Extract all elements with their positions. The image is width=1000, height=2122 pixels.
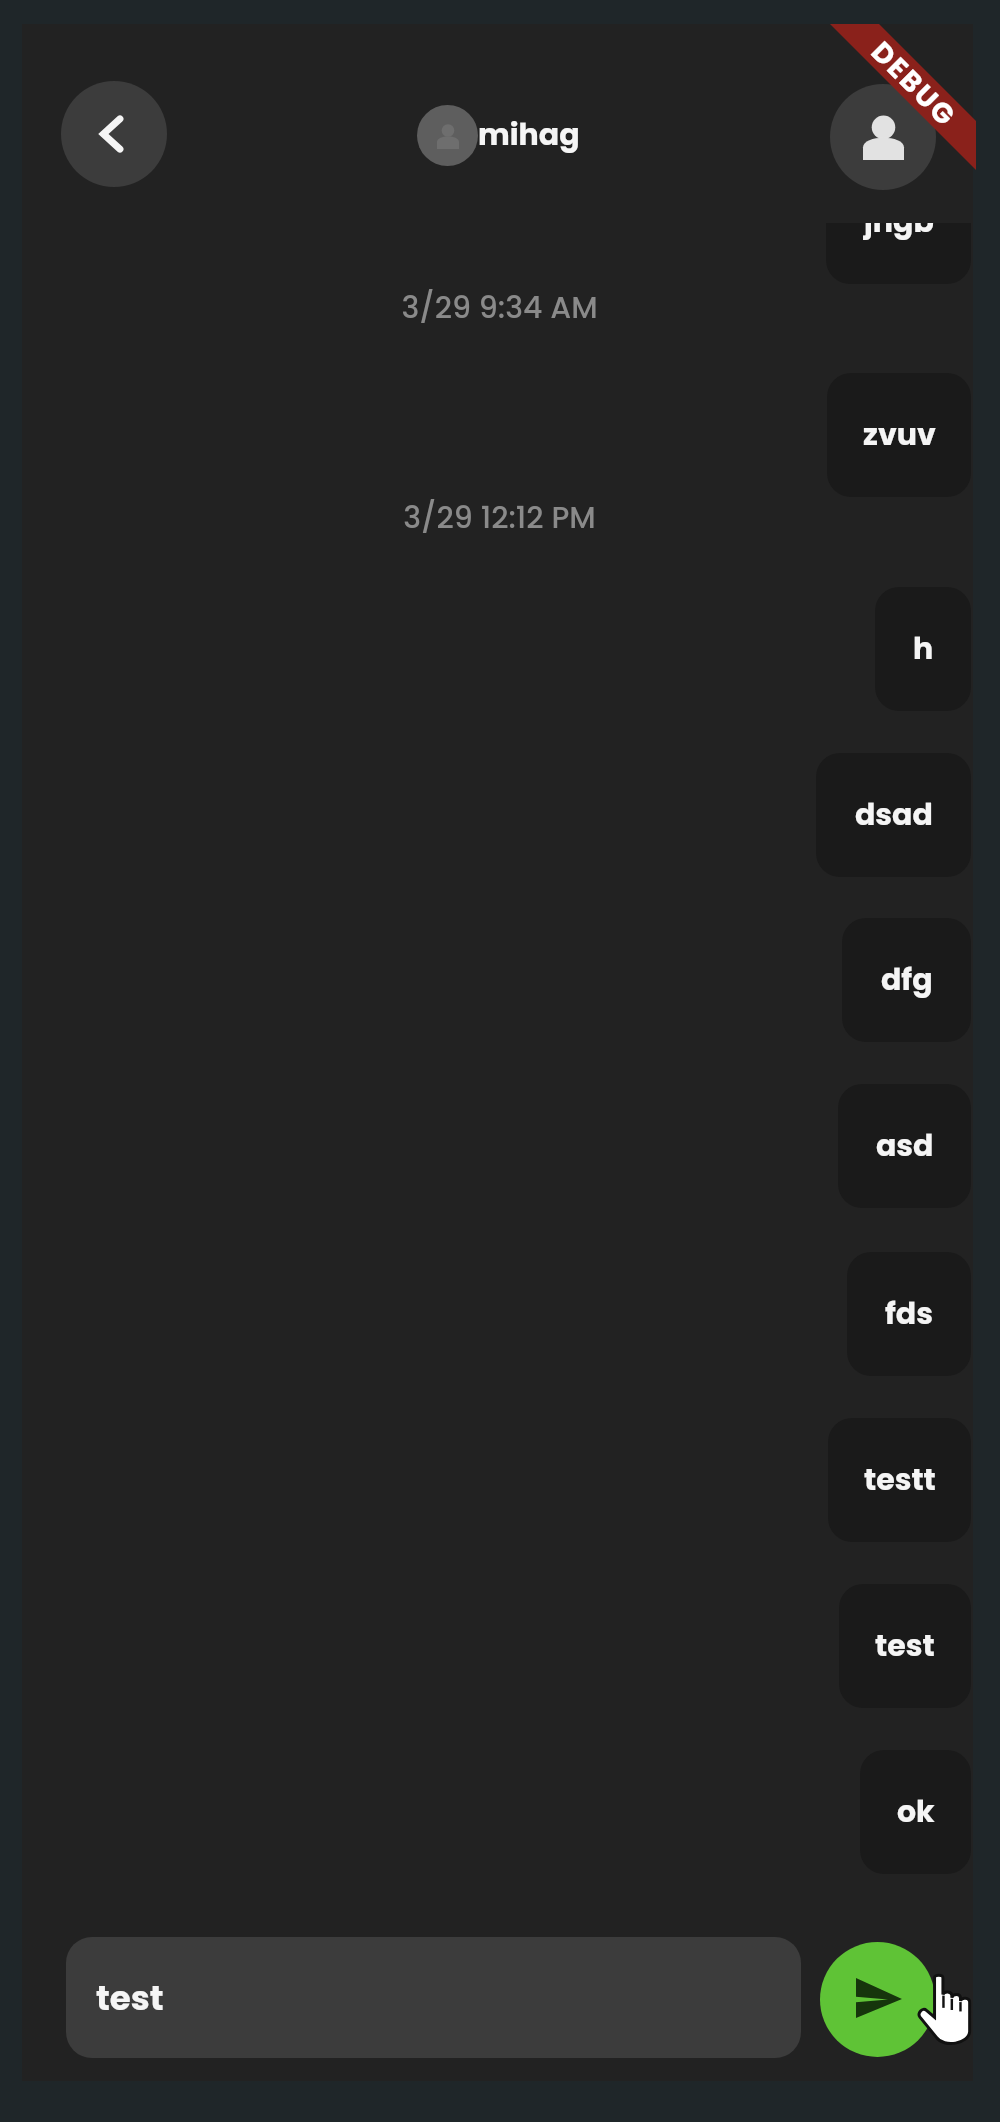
staticText: asd (876, 1125, 934, 1167)
staticText: mihag (478, 114, 580, 156)
button[interactable]: fds (847, 1252, 971, 1376)
button[interactable]: Profile (830, 84, 936, 190)
staticText: fds (885, 1293, 933, 1335)
button[interactable]: testt (828, 1418, 971, 1542)
staticText: dsad (855, 794, 933, 836)
staticText: test (875, 1625, 935, 1667)
button[interactable]: asd (838, 1084, 971, 1208)
staticText: ok (897, 1791, 935, 1833)
button[interactable]: Back (61, 81, 167, 187)
staticText: dfg (881, 959, 933, 1001)
staticText: zvuv (863, 414, 936, 456)
staticText: test (96, 1974, 164, 2022)
button[interactable]: jngb (826, 160, 971, 284)
button[interactable]: Send (820, 1942, 935, 2057)
staticText: 3/29 12:12 PM (403, 497, 596, 539)
staticText: DEBUG (862, 33, 966, 136)
button[interactable]: h (875, 587, 971, 711)
button[interactable]: dsad (816, 753, 971, 877)
staticText: 3/29 9:34 AM (401, 287, 598, 329)
button[interactable]: dfg (842, 918, 971, 1042)
staticText: jngb (864, 201, 934, 243)
button[interactable]: test (839, 1584, 971, 1708)
button[interactable]: ok (860, 1750, 971, 1874)
button[interactable]: test (66, 1937, 801, 2058)
button[interactable]: zvuv (827, 373, 971, 497)
button[interactable]: mihag (417, 104, 580, 166)
staticText: h (913, 628, 934, 670)
staticText: testt (864, 1459, 936, 1501)
